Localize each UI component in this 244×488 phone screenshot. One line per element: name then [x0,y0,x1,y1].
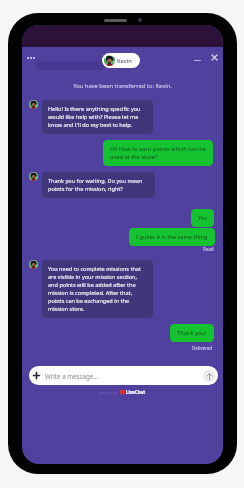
staticText: Yes [198,214,207,222]
button[interactable]: Add attachment [29,366,218,385]
staticText: I guess it is the same thing [136,233,208,241]
button[interactable]: Kevin [102,53,140,68]
staticText: Kevin [117,57,132,65]
staticText: Delivered [192,345,213,351]
button[interactable]: Close [209,52,219,62]
staticText: You need to complete missions that are v… [48,265,141,313]
staticText: Hi! How to earn points which can be used… [110,145,206,161]
staticText: Thank you for waiting. Do you mean point… [48,177,143,193]
button[interactable]: I guess it is the same thing [129,228,215,246]
button[interactable]: You need to complete missions that are v… [42,260,153,318]
other: Add attachment [33,372,40,379]
staticText: powered by [99,390,118,395]
button[interactable]: Thank you for waiting. Do you mean point… [42,172,155,198]
staticText: Read [203,246,214,252]
button[interactable]: Hello! Is there anything specific you wo… [42,100,153,134]
staticText: LiveChat [126,389,146,395]
button[interactable]: Hi! How to earn points which can be used… [103,140,213,166]
staticText: You have been transferred to: Kevin. [73,82,172,90]
button[interactable]: Send [203,370,215,382]
button[interactable]: Minimize [192,53,203,63]
staticText: Thank you! [177,329,207,337]
button[interactable]: Menu [26,53,36,62]
staticText: Write a message... [45,372,99,380]
button[interactable]: Thank you! [170,324,214,342]
staticText: Hello! Is there anything specific you wo… [48,105,141,129]
button[interactable]: Yes [191,209,214,227]
